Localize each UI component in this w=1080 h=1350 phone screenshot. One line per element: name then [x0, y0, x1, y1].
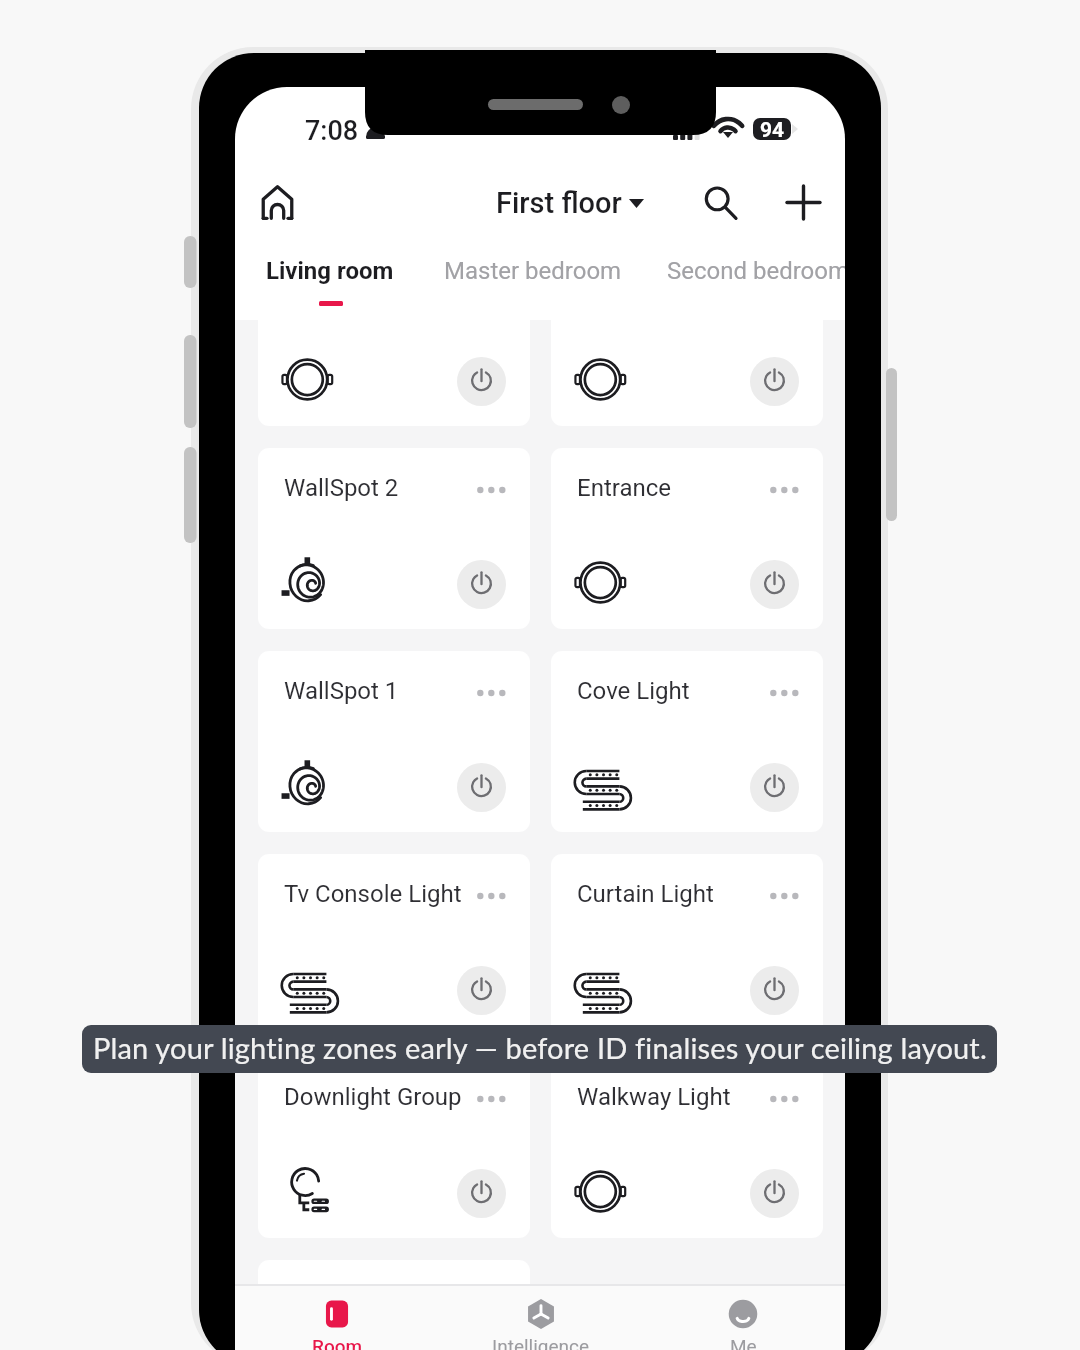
button[interactable]: WallSpot 1 [258, 651, 530, 832]
button[interactable]: Power [750, 1169, 799, 1218]
button[interactable]: Power [457, 966, 506, 1015]
button[interactable]: WallSpot 2 [258, 448, 530, 629]
button[interactable]: Power [457, 763, 506, 812]
staticText: WallSpot 1 [284, 677, 399, 705]
button[interactable]: Power [750, 357, 799, 406]
staticText: Downlight Group [284, 1083, 462, 1111]
button[interactable]: Home [248, 173, 306, 231]
button[interactable]: More options [475, 1088, 508, 1110]
staticText: Walkway Light [577, 1083, 731, 1111]
button[interactable]: Add [776, 175, 830, 229]
staticText: Curtain Light [577, 880, 714, 908]
button[interactable]: First floor [496, 180, 631, 226]
staticText: 94 [760, 118, 785, 140]
button[interactable]: Power [750, 560, 799, 609]
button[interactable]: Second bedroom [667, 257, 845, 305]
staticText: Room [312, 1335, 363, 1350]
button[interactable]: Power [750, 966, 799, 1015]
staticText: Plan your lighting zones early — before … [93, 1030, 987, 1065]
staticText: Second bedroom [667, 257, 845, 285]
button[interactable]: Intelligence [466, 1286, 616, 1350]
button[interactable]: More options [768, 1088, 801, 1110]
button[interactable]: Power [750, 763, 799, 812]
button[interactable]: More options [768, 885, 801, 907]
button[interactable]: Walkway Light [551, 1057, 823, 1238]
button[interactable]: More options [475, 682, 508, 704]
button[interactable]: Me [668, 1286, 818, 1350]
button[interactable]: Curtain Light [551, 854, 823, 1035]
button[interactable]: Power [457, 357, 506, 406]
button[interactable]: Cove Light [551, 651, 823, 832]
staticText: Intelligence [492, 1335, 590, 1350]
button[interactable]: Search [693, 175, 747, 229]
button[interactable]: Downlight Group [258, 1057, 530, 1238]
button[interactable]: Master bedroom [444, 257, 622, 305]
button[interactable]: Entrance [551, 448, 823, 629]
button[interactable]: More options [768, 682, 801, 704]
staticText: Master bedroom [444, 257, 622, 285]
button[interactable]: Power [551, 245, 823, 426]
staticText: Me [730, 1335, 757, 1350]
staticText: WallSpot 2 [284, 474, 399, 502]
button[interactable]: Power [457, 560, 506, 609]
staticText: Cove Light [577, 677, 690, 705]
staticText: Floor Lamp [284, 1286, 406, 1314]
staticText: Living room [266, 257, 394, 285]
button[interactable]: Power [457, 1169, 506, 1218]
staticText: Entrance [577, 474, 672, 502]
button[interactable]: More options [475, 885, 508, 907]
button[interactable]: Tv Console Light [258, 854, 530, 1035]
button[interactable]: More options [475, 479, 508, 501]
staticText: First floor [496, 186, 622, 220]
staticText: Tv Console Light [284, 880, 462, 908]
button[interactable]: Floor Lamp [258, 1260, 530, 1350]
button[interactable]: Power [258, 245, 530, 426]
button[interactable]: More options [768, 479, 801, 501]
button[interactable]: Living room [266, 257, 394, 305]
button[interactable]: Room [262, 1286, 412, 1350]
staticText: 7:08 [305, 115, 359, 147]
